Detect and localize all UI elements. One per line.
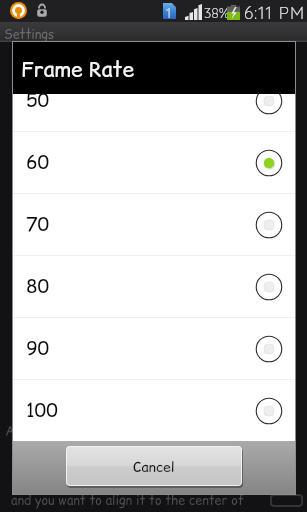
staticText: 6:11 PM [244, 2, 306, 23]
other: Not selected [254, 334, 284, 364]
other: Notification [10, 2, 27, 19]
other: Not selected [254, 94, 284, 116]
button[interactable]: 100 [13, 380, 295, 441]
staticText: 1 [166, 4, 172, 22]
other: Not selected [254, 396, 284, 426]
staticText: Cancel [133, 457, 175, 477]
staticText: 50 [26, 94, 50, 114]
staticText: Alignment [5, 421, 71, 441]
staticText: and you want to align it to the center o… [11, 492, 245, 509]
staticText: 70 [26, 211, 50, 238]
button[interactable]: 70 [13, 194, 295, 255]
staticText: Frame Rate [21, 55, 135, 84]
button[interactable]: 90 [13, 318, 295, 379]
other: Not selected [254, 272, 284, 302]
button[interactable]: 50 [13, 94, 295, 131]
staticText: 60 [26, 149, 50, 176]
staticText: 38% [204, 4, 230, 22]
staticText: 100 [26, 397, 58, 424]
staticText: 90 [26, 335, 50, 362]
other: Not selected [254, 210, 284, 240]
staticText: Settings [4, 26, 55, 43]
button[interactable]: Cancel [66, 446, 242, 486]
staticText: 80 [26, 273, 50, 300]
other: Secure [35, 3, 49, 18]
other: Selected [254, 148, 284, 178]
button[interactable]: 60 [13, 132, 295, 193]
button[interactable]: 80 [13, 256, 295, 317]
